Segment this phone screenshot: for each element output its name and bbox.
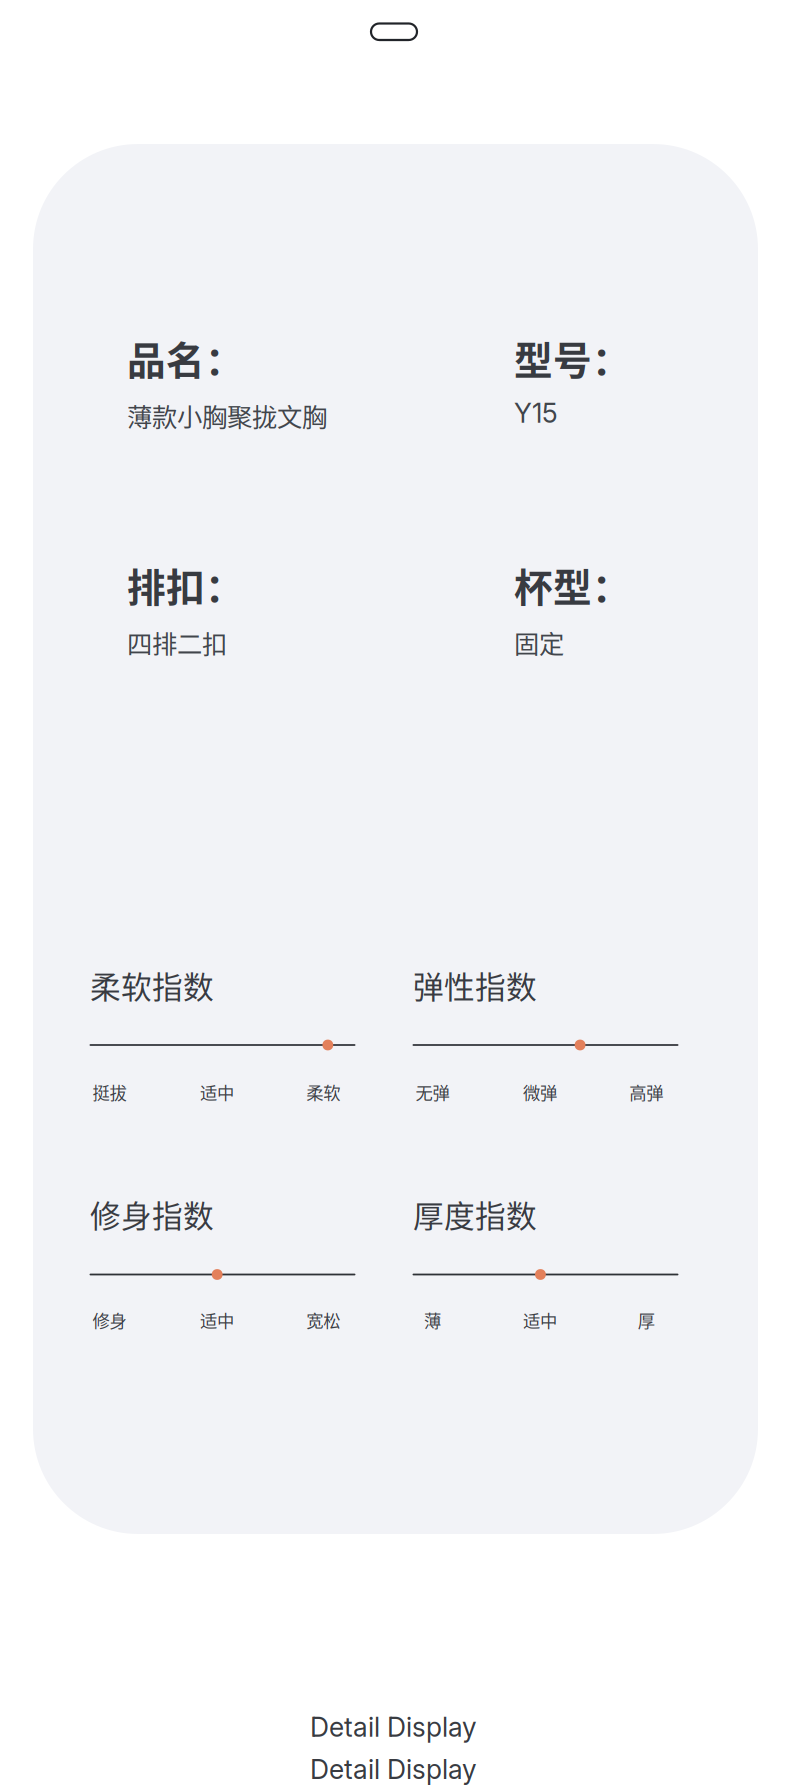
staticText: 适中 [523,1307,557,1333]
staticText: 柔软指数 [90,963,214,1007]
staticText: 修身指数 [90,1192,214,1236]
staticText: 宽松 [306,1307,340,1333]
staticText: Detail Display [310,1711,477,1743]
staticText: 薄款小胸聚拢文胸 [127,397,327,434]
staticText: 挺拔 [93,1079,127,1105]
button[interactable]: Detail Display [310,1711,477,1785]
staticText: 四排二扣 [127,624,227,661]
staticText: 高弹 [629,1079,663,1105]
staticText: 薄 [424,1307,441,1333]
staticText: 品名： [127,330,244,386]
staticText: 微弹 [523,1079,557,1105]
staticText: 适中 [200,1079,234,1105]
staticText: 厚 [638,1307,655,1333]
button[interactable]: 品名： [127,330,327,434]
staticText: 杯型： [514,557,631,613]
staticText: 固定 [514,624,564,661]
button[interactable]: 杯型： [514,557,631,661]
staticText: Detail Display [310,1753,477,1786]
staticText: 排扣： [127,557,244,613]
staticText: 柔软 [306,1079,340,1105]
staticText: Y15 [514,397,558,429]
button[interactable]: 排扣： [127,557,244,661]
staticText: 无弹 [416,1079,450,1105]
staticText: 适中 [200,1307,234,1333]
staticText: 修身 [93,1307,127,1333]
staticText: 型号： [514,330,631,386]
button[interactable]: 型号： [514,330,631,429]
staticText: 弹性指数 [413,963,537,1007]
staticText: 厚度指数 [413,1192,537,1236]
